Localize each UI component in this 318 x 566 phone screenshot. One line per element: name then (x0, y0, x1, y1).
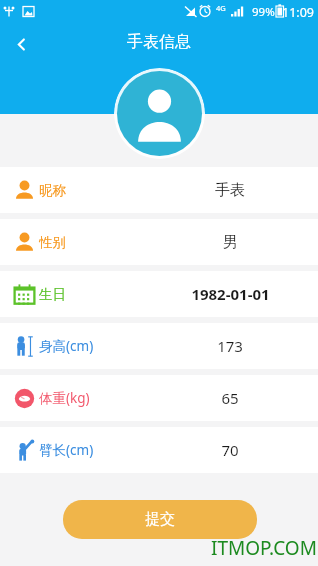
staticText: 身高(cm) (39, 337, 94, 355)
button[interactable]: Back (5, 28, 37, 60)
button[interactable]: 提交 (63, 500, 257, 539)
button[interactable]: 臂长(cm) (0, 427, 318, 473)
staticText: 提交 (145, 510, 175, 529)
button[interactable]: 体重(kg) (0, 375, 318, 421)
staticText: ITMOP.COM (211, 535, 317, 561)
staticText: 臂长(cm) (39, 441, 94, 459)
button[interactable]: 身高(cm) (0, 323, 318, 369)
button[interactable]: Profile photo (114, 68, 205, 159)
staticText: 11:09 (282, 4, 314, 21)
button[interactable]: 性别 (0, 219, 318, 265)
staticText: 99% (252, 4, 275, 20)
button[interactable]: 生日 (0, 271, 318, 317)
staticText: 昵称 (39, 182, 66, 199)
staticText: 手表 (215, 181, 245, 200)
staticText: 性别 (39, 234, 66, 251)
staticText: 生日 (39, 286, 66, 303)
button[interactable]: 昵称 (0, 167, 318, 213)
staticText: 4G (216, 3, 226, 13)
staticText: 体重(kg) (39, 389, 90, 407)
staticText: 70 (221, 440, 239, 460)
staticText: 1982-01-01 (191, 284, 270, 304)
staticText: 65 (221, 388, 239, 408)
staticText: 男 (223, 233, 238, 252)
staticText: 手表信息 (127, 32, 191, 52)
staticText: 173 (217, 336, 243, 356)
